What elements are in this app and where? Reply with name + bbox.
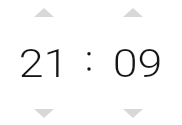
button[interactable]: Decrease hour xyxy=(20,99,68,125)
staticText: 21 xyxy=(18,42,69,87)
button[interactable]: 09 xyxy=(99,36,175,92)
button[interactable]: 21 xyxy=(5,36,81,92)
button[interactable]: Increase minute xyxy=(109,0,157,26)
staticText: 09 xyxy=(112,42,163,87)
button[interactable]: Increase hour xyxy=(20,0,68,26)
button[interactable]: Decrease minute xyxy=(109,99,157,125)
